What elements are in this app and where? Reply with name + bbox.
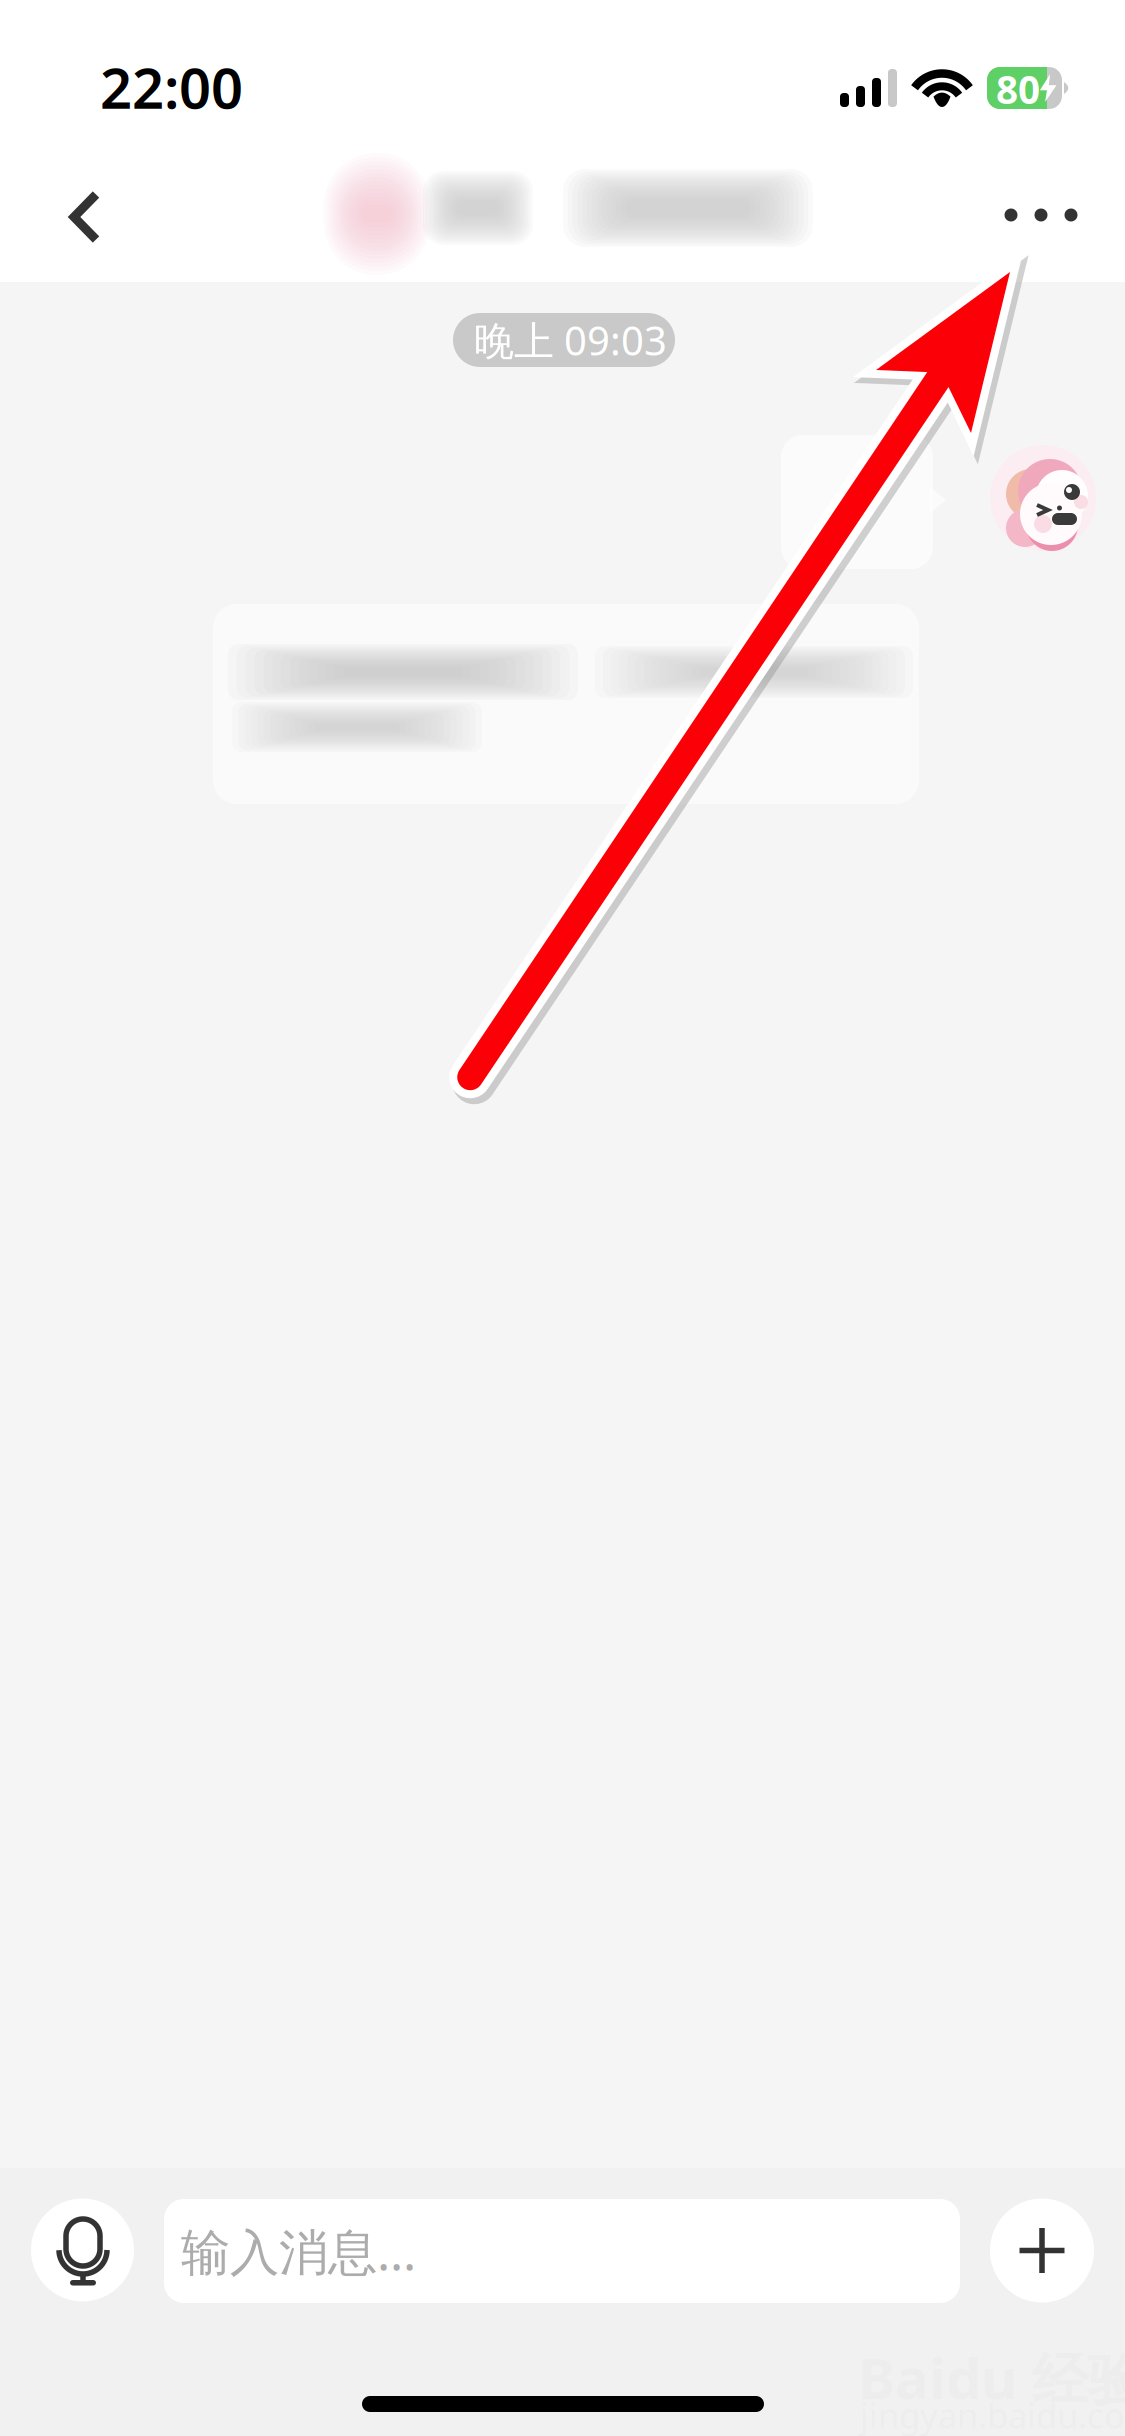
button[interactable]: 输入消息... — [164, 2199, 960, 2303]
button[interactable]: More — [978, 159, 1104, 271]
button[interactable]: More options — [990, 2198, 1094, 2303]
staticText: 晚上 09:03 — [474, 313, 667, 366]
button[interactable]: Voice message — [31, 2198, 134, 2302]
staticText: 22:00 — [100, 50, 243, 124]
staticText: 80 — [996, 63, 1040, 115]
button[interactable]: Back — [27, 159, 143, 275]
staticText: 输入消息... — [181, 2218, 416, 2284]
